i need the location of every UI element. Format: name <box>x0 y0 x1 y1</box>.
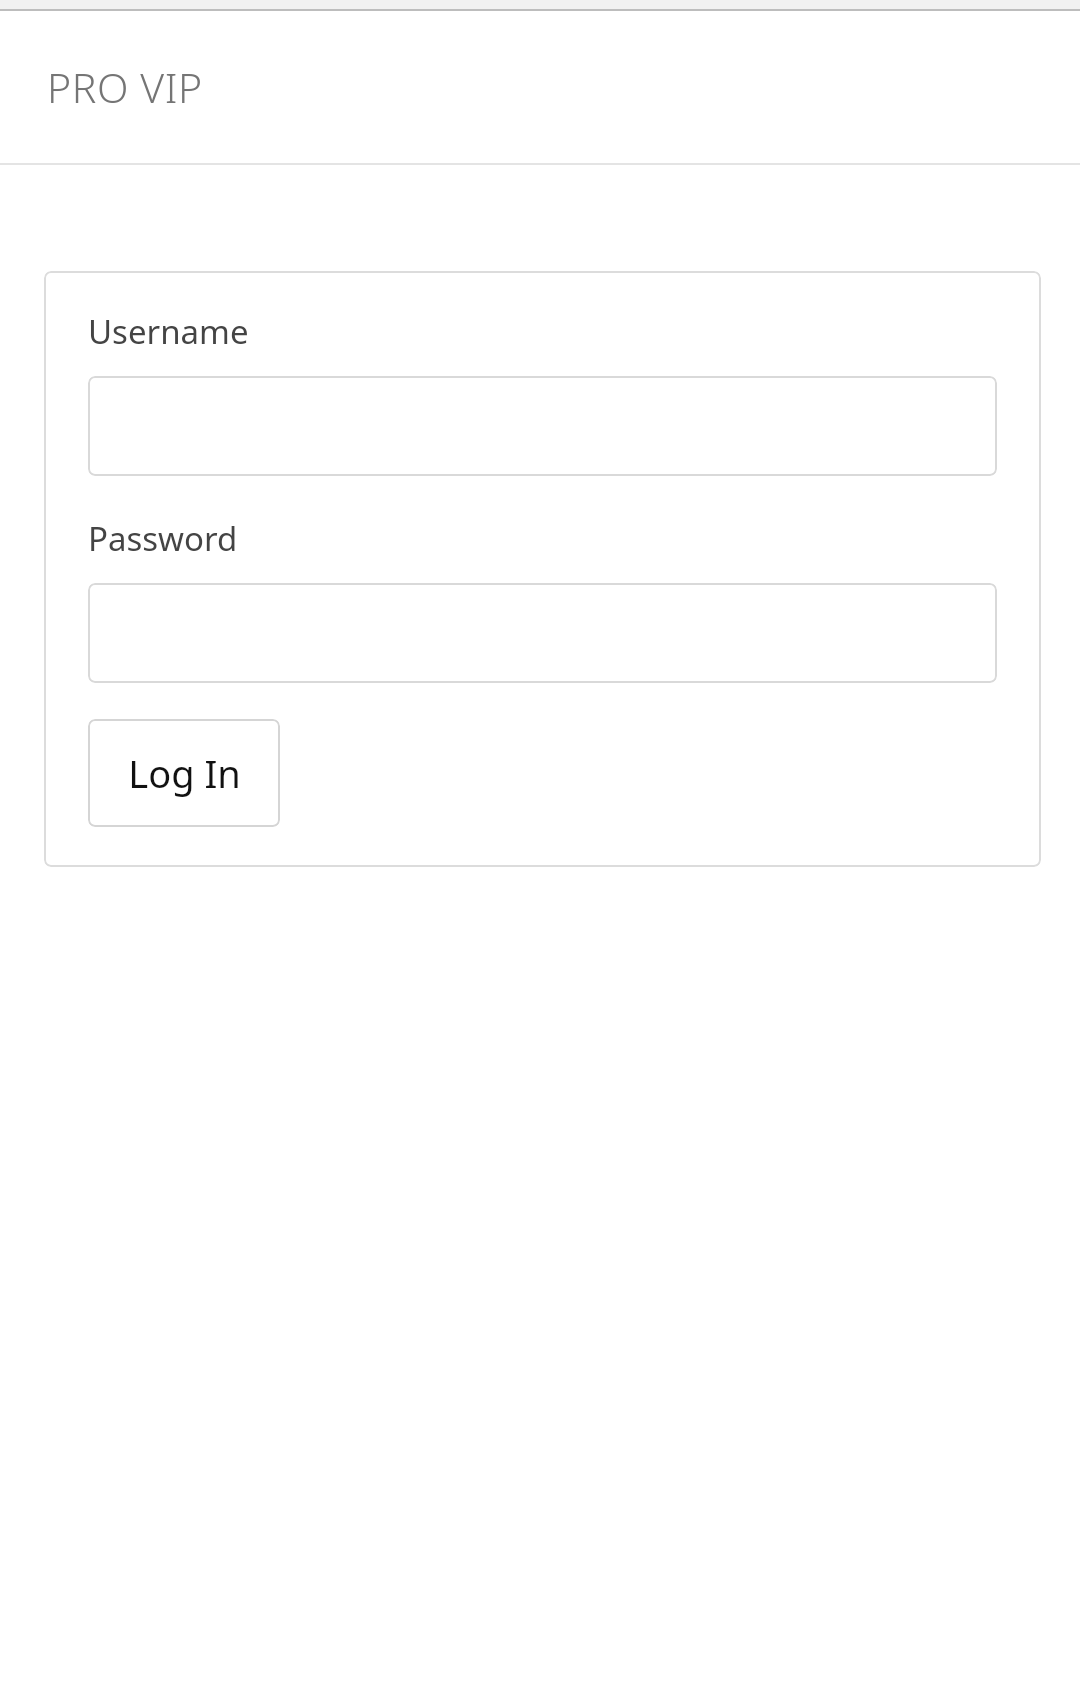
button[interactable] <box>88 583 997 683</box>
staticText: Log In <box>128 747 241 799</box>
button[interactable]: Log In <box>88 719 280 827</box>
staticText: Username <box>88 309 249 354</box>
staticText: PRO VIP <box>47 59 203 115</box>
staticText: Password <box>88 516 238 561</box>
button[interactable] <box>88 376 997 476</box>
